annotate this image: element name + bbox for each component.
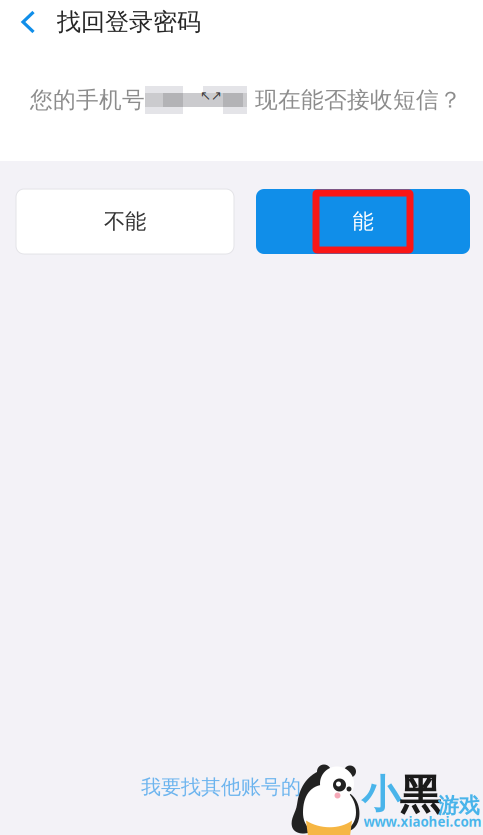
staticText: 小 [361, 771, 400, 818]
staticText: 不能 [104, 208, 146, 235]
staticText: www.xiaohei.com [363, 813, 481, 830]
staticText: 黑 [399, 770, 440, 820]
button[interactable]: Back [0, 0, 57, 44]
button[interactable]: 我要找其他账号的 [141, 774, 301, 800]
staticText: 游戏 [437, 793, 479, 819]
button[interactable]: 能 [256, 189, 470, 254]
staticText: 能 [352, 208, 373, 235]
staticText: 找回登录密码 [57, 7, 201, 37]
button[interactable]: 不能 [16, 189, 234, 254]
staticText: 您的手机号 [30, 86, 145, 114]
staticText: 我要找其他账号的 [141, 775, 301, 799]
staticText: 现在能否接收短信？ [255, 86, 462, 114]
staticText: ↖↗ [200, 88, 222, 103]
